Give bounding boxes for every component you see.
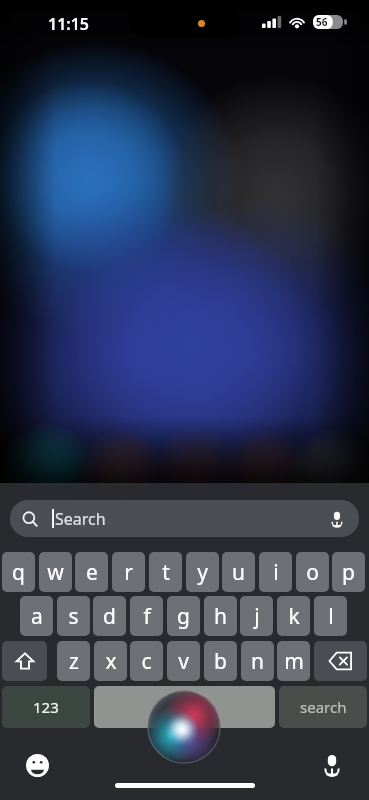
staticText: u: [232, 558, 245, 587]
button[interactable]: t: [149, 552, 182, 592]
staticText: 11:15: [48, 13, 90, 35]
staticText: Search: [55, 508, 106, 530]
staticText: h: [214, 602, 227, 631]
staticText: l: [328, 602, 334, 631]
staticText: x: [105, 647, 117, 676]
staticText: y: [197, 558, 208, 587]
button[interactable]: Shift: [2, 641, 47, 681]
button[interactable]: search: [279, 686, 367, 728]
button[interactable]: q: [2, 552, 35, 592]
button[interactable]: m: [277, 641, 310, 681]
button[interactable]: i: [259, 552, 292, 592]
staticText: o: [306, 558, 319, 587]
staticText: b: [214, 647, 227, 676]
staticText: k: [288, 602, 300, 631]
staticText: q: [12, 558, 25, 587]
staticText: c: [141, 647, 152, 676]
button[interactable]: l: [314, 596, 347, 636]
staticText: j: [254, 602, 260, 631]
button[interactable]: f: [130, 596, 163, 636]
button[interactable]: s: [57, 596, 90, 636]
button[interactable]: Dictation: [311, 744, 353, 786]
button[interactable]: Siri: [145, 688, 223, 766]
button[interactable]: z: [57, 641, 90, 681]
staticText: t: [162, 558, 170, 587]
button[interactable]: d: [93, 596, 126, 636]
button[interactable]: k: [277, 596, 310, 636]
button[interactable]: n: [241, 641, 274, 681]
button[interactable]: u: [222, 552, 255, 592]
staticText: a: [31, 602, 43, 631]
button[interactable]: o: [296, 552, 329, 592]
button[interactable]: y: [186, 552, 219, 592]
staticText: n: [251, 647, 264, 676]
button[interactable]: w: [39, 552, 72, 592]
button[interactable]: x: [94, 641, 127, 681]
staticText: v: [178, 647, 189, 676]
button[interactable]: Search: [10, 500, 359, 537]
button[interactable]: v: [167, 641, 200, 681]
staticText: p: [342, 558, 355, 587]
staticText: search: [300, 697, 347, 717]
button[interactable]: [94, 686, 275, 728]
staticText: 56: [316, 15, 328, 29]
staticText: i: [273, 558, 279, 587]
staticText: r: [124, 558, 133, 587]
staticText: s: [68, 602, 79, 631]
button[interactable]: Emoji: [16, 744, 58, 786]
button[interactable]: j: [240, 596, 273, 636]
staticText: e: [86, 558, 98, 587]
staticText: g: [177, 602, 190, 631]
button[interactable]: c: [130, 641, 163, 681]
staticText: w: [47, 558, 64, 587]
button[interactable]: g: [167, 596, 200, 636]
button[interactable]: Delete: [314, 641, 367, 681]
button[interactable]: 123: [2, 686, 90, 728]
staticText: m: [284, 647, 304, 676]
staticText: d: [103, 602, 116, 631]
button[interactable]: b: [204, 641, 237, 681]
button[interactable]: r: [112, 552, 145, 592]
staticText: z: [69, 647, 79, 676]
staticText: 123: [33, 697, 59, 717]
button[interactable]: h: [204, 596, 237, 636]
button[interactable]: Dictate: [323, 505, 351, 533]
button[interactable]: e: [75, 552, 108, 592]
button[interactable]: a: [20, 596, 53, 636]
staticText: f: [143, 602, 151, 631]
button[interactable]: p: [332, 552, 365, 592]
